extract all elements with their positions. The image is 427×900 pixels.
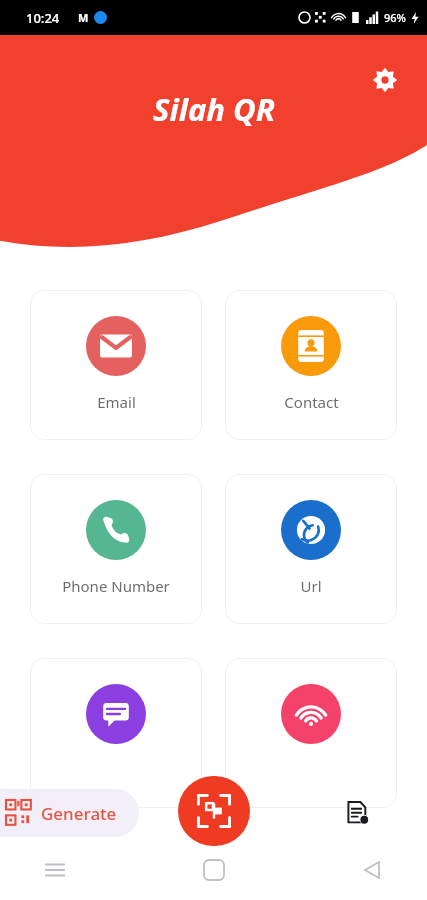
button[interactable]: Generate: [0, 789, 139, 837]
staticText: Phone Number: [62, 576, 170, 596]
staticText: 96%: [384, 10, 406, 25]
button[interactable]: History: [335, 791, 379, 835]
button[interactable]: [225, 658, 397, 808]
staticText: M: [78, 10, 89, 25]
button[interactable]: [30, 658, 202, 808]
button[interactable]: Url: [225, 474, 397, 624]
button[interactable]: Settings: [363, 58, 407, 102]
staticText: Silah QR: [153, 88, 275, 130]
button[interactable]: Email: [30, 290, 202, 440]
staticText: 10:24: [26, 9, 60, 27]
staticText: Email: [97, 392, 136, 412]
staticText: Contact: [284, 392, 339, 412]
staticText: Generate: [41, 802, 117, 825]
button[interactable]: Contact: [225, 290, 397, 440]
staticText: Url: [300, 576, 322, 596]
button[interactable]: Phone Number: [30, 474, 202, 624]
button[interactable]: Scan QR code: [178, 776, 250, 846]
